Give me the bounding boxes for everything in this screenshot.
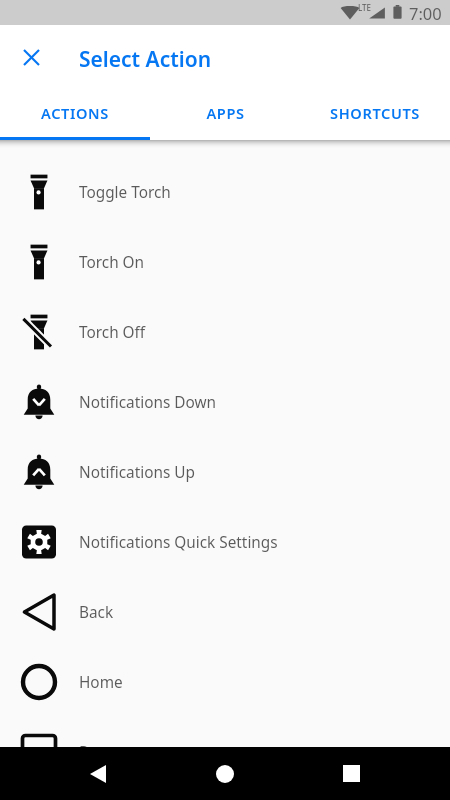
- staticText: LTE: [358, 2, 372, 13]
- staticText: ACTIONS: [41, 103, 109, 123]
- staticText: 7:00: [409, 2, 442, 24]
- button[interactable]: SHORTCUTS: [300, 89, 450, 137]
- staticText: SHORTCUTS: [330, 103, 420, 123]
- button[interactable]: Torch Off: [0, 296, 450, 366]
- button[interactable]: Recents: [0, 716, 450, 747]
- staticText: Notifications Down: [79, 392, 216, 413]
- button[interactable]: Back: [62, 747, 134, 800]
- button[interactable]: APPS: [150, 89, 300, 137]
- staticText: Home: [79, 672, 123, 693]
- button[interactable]: Notifications Quick Settings: [0, 506, 450, 576]
- staticText: Back: [79, 602, 114, 623]
- button[interactable]: Home: [189, 747, 261, 800]
- staticText: Notifications Up: [79, 462, 195, 483]
- button[interactable]: Notifications Up: [0, 436, 450, 506]
- button[interactable]: Close: [9, 35, 53, 79]
- button[interactable]: Back: [0, 576, 450, 646]
- button[interactable]: Notifications Down: [0, 366, 450, 436]
- staticText: Select Action: [79, 45, 212, 74]
- staticText: Recents: [79, 742, 136, 747]
- button[interactable]: ACTIONS: [0, 89, 150, 137]
- button[interactable]: Recents: [315, 747, 387, 800]
- staticText: APPS: [206, 103, 245, 123]
- staticText: Toggle Torch: [79, 182, 171, 203]
- staticText: Notifications Quick Settings: [79, 532, 278, 553]
- button[interactable]: Home: [0, 646, 450, 716]
- staticText: Torch On: [79, 252, 145, 273]
- staticText: Torch Off: [79, 322, 146, 343]
- button[interactable]: Torch On: [0, 226, 450, 296]
- button[interactable]: Toggle Torch: [0, 156, 450, 226]
